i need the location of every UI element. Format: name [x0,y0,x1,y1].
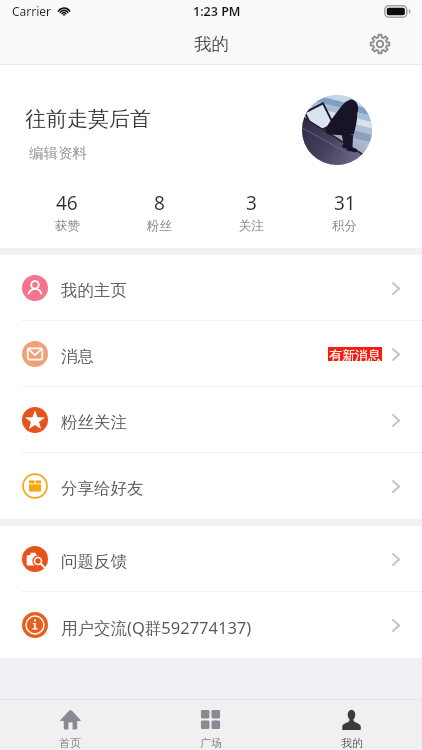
staticText: 1:23 PM [193,3,241,20]
staticText: 往前走莫后首 [25,106,151,132]
staticText: 广场 [200,736,222,750]
staticText: 分享给好友 [61,478,144,499]
staticText: 我的主页 [61,280,127,301]
staticText: Carrier [12,3,52,19]
button[interactable]: Settings [369,33,391,55]
staticText: 8 [154,190,165,216]
button[interactable]: 我的 [281,700,422,750]
button[interactable]: 8 [113,190,205,240]
button[interactable]: 编辑资料 [29,144,87,162]
button[interactable]: 3 [205,190,298,240]
staticText: 31 [334,190,356,216]
staticText: 我的 [341,736,363,750]
staticText: 获赞 [55,218,80,234]
staticText: 问题反馈 [61,551,127,572]
button[interactable]: Avatar [302,95,372,165]
staticText: 3 [246,190,257,216]
staticText: 有新消息 [329,347,381,361]
staticText: 粉丝 [147,218,172,234]
staticText: 我的 [194,33,229,55]
staticText: 消息 [61,346,94,367]
button[interactable]: 31 [298,190,391,240]
staticText: 粉丝关注 [61,412,127,433]
button[interactable]: 广场 [140,700,281,750]
button[interactable]: 用户交流(Q群592774137) [0,592,422,658]
staticText: 关注 [239,218,264,234]
staticText: 46 [56,190,78,216]
button[interactable]: 46 [21,190,113,240]
button[interactable]: 问题反馈 [0,526,422,592]
staticText: 积分 [332,218,357,234]
staticText: 首页 [59,736,81,750]
button[interactable]: 我的主页 [0,255,422,321]
staticText: 用户交流(Q群592774137) [61,616,252,639]
button[interactable]: 粉丝关注 [0,387,422,453]
button[interactable]: 分享给好友 [0,453,422,519]
button[interactable]: 消息 [0,321,422,387]
button[interactable]: 首页 [0,700,140,750]
